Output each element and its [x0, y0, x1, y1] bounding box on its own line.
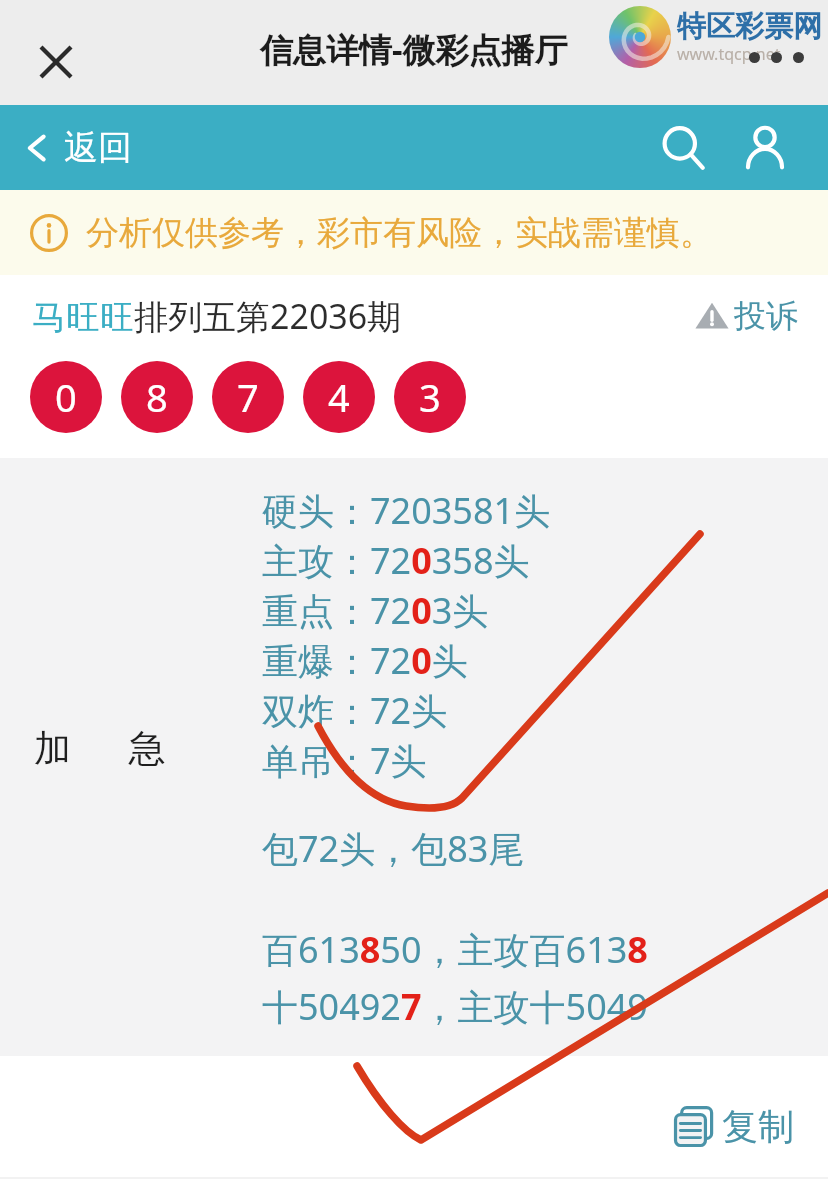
staticText: 马旺旺排列五第22036期 [32, 293, 402, 339]
staticText: 单吊：7头 [262, 736, 427, 785]
button[interactable]: 复制 [672, 1104, 794, 1149]
staticText: 包72头，包83尾 [262, 824, 525, 873]
staticText: 主攻：720358头 [262, 536, 530, 585]
staticText: 信息详情-微彩点播厅 [260, 27, 568, 72]
staticText: 硬头：7203581头 [262, 486, 551, 535]
staticText: 加 急 [34, 721, 166, 772]
button[interactable]: Account [732, 115, 798, 181]
staticText: 重点：7203头 [262, 586, 489, 635]
staticText: www.tqcp.net [677, 43, 781, 65]
staticText: 返回 [64, 126, 132, 169]
button[interactable]: Close [24, 30, 88, 94]
staticText: 3 [419, 371, 441, 423]
staticText: 分析仅供参考，彩市有风险，实战需谨慎。 [86, 212, 713, 254]
staticText: 7 [237, 371, 259, 423]
staticText: 十504927，主攻十5049 [262, 982, 648, 1031]
staticText: 0 [55, 371, 77, 423]
staticText: 重爆：720头 [262, 636, 468, 685]
staticText: 双炸：72头 [262, 686, 448, 735]
staticText: 8 [146, 371, 168, 423]
staticText: 百613850，主攻百6138 [262, 925, 648, 974]
staticText: 特区彩票网 [677, 8, 822, 45]
button[interactable]: 返回 [22, 126, 132, 169]
button[interactable]: 投诉 [694, 296, 798, 336]
staticText: 投诉 [734, 296, 798, 336]
staticText: 复制 [722, 1104, 794, 1149]
staticText: 4 [328, 371, 350, 423]
button[interactable]: Search [650, 115, 716, 181]
